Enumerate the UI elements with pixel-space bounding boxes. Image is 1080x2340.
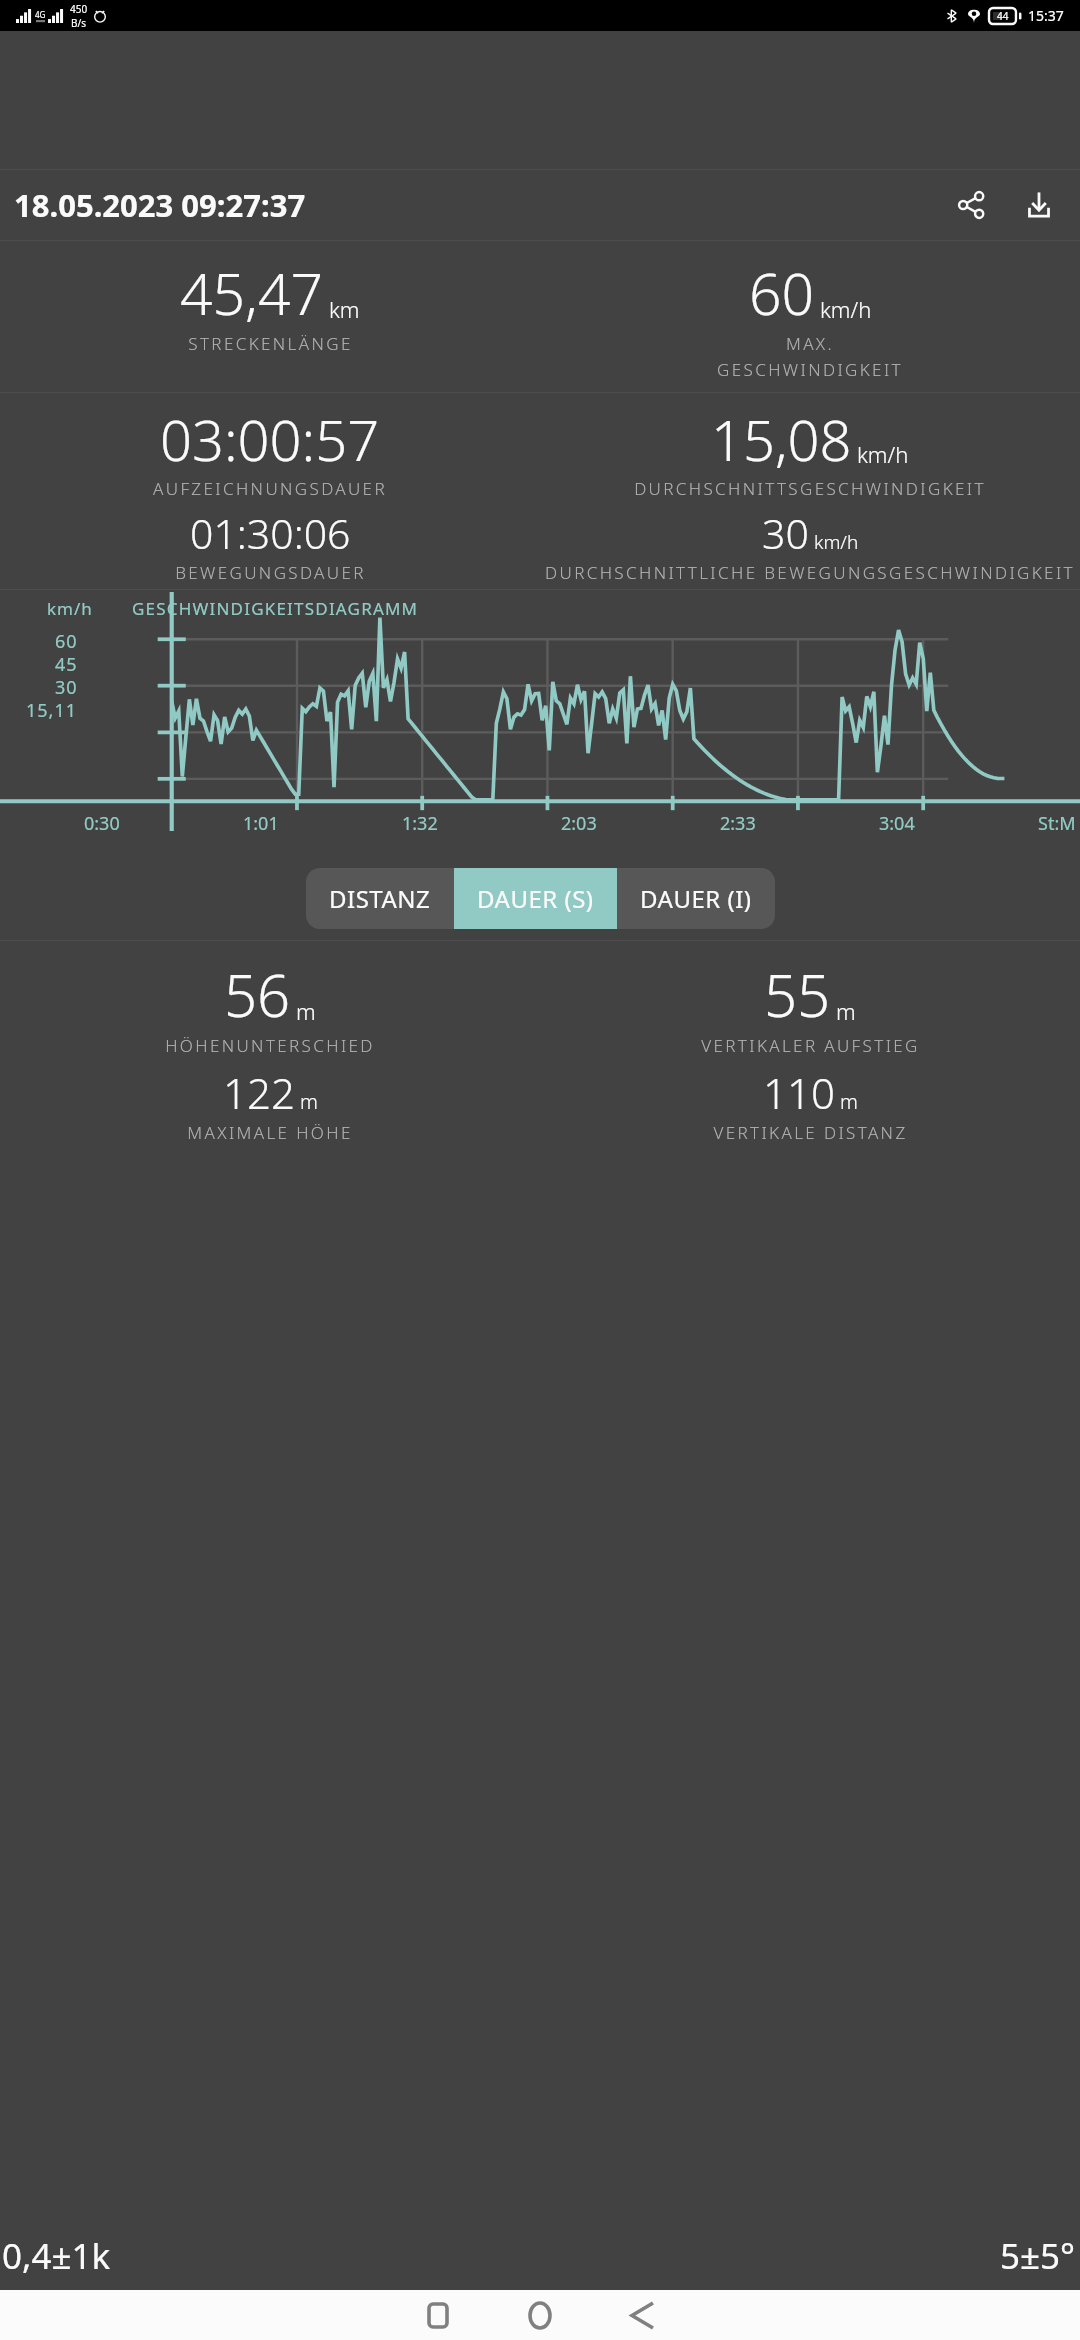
button[interactable]: Download <box>1012 178 1066 232</box>
button[interactable]: Recents <box>407 2290 469 2340</box>
staticText: 30 <box>762 505 809 561</box>
staticText: 30 <box>55 675 78 700</box>
staticText: DURCHSCHNITTSGESCHWINDIGKEIT <box>634 477 986 500</box>
button[interactable]: DISTANZ <box>306 868 454 929</box>
staticText: 18.05.2023 09:27:37 <box>14 184 306 226</box>
staticText: 15,11 <box>26 698 78 723</box>
button[interactable]: 110 <box>540 1064 1080 1144</box>
button[interactable]: 122 <box>0 1064 540 1144</box>
staticText: 56 <box>224 955 291 1034</box>
staticText: 45 <box>55 652 78 677</box>
staticText: 4G <box>35 9 46 20</box>
button[interactable]: 03:00:57 <box>0 401 540 500</box>
button[interactable]: 60 <box>540 254 1080 381</box>
button[interactable]: DAUER (S) <box>454 868 617 929</box>
staticText: km <box>329 294 360 324</box>
staticText: m <box>836 996 856 1026</box>
staticText: 1:32 <box>402 811 438 836</box>
staticText: m <box>840 1088 858 1115</box>
button[interactable]: 45,47 <box>0 254 540 355</box>
button[interactable]: DAUER (I) <box>617 868 775 929</box>
staticText: DISTANZ <box>329 882 431 915</box>
button[interactable]: 15,08 <box>540 401 1080 500</box>
staticText: 0,4±1k <box>2 2232 111 2280</box>
staticText: BEWEGUNGSDAUER <box>175 561 366 584</box>
staticText: 44 <box>997 9 1009 23</box>
staticText: 110 <box>763 1064 835 1121</box>
staticText: MAX. GESCHWINDIGKEIT <box>717 332 903 381</box>
staticText: 122 <box>223 1064 295 1121</box>
staticText: 2:33 <box>720 811 756 836</box>
staticText: 45,47 <box>180 254 324 332</box>
staticText: 03:00:57 <box>160 401 380 477</box>
staticText: B/s <box>71 16 87 30</box>
staticText: 3:04 <box>879 811 915 836</box>
staticText: 0:30 <box>84 811 120 836</box>
staticText: 15:37 <box>1028 6 1064 25</box>
staticText: MAXIMALE HÖHE <box>187 1121 353 1144</box>
staticText: km/h <box>820 294 872 324</box>
button[interactable]: 55 <box>540 955 1080 1057</box>
button[interactable]: Back <box>611 2290 673 2340</box>
staticText: 01:30:06 <box>190 505 351 561</box>
staticText: St:M <box>1038 811 1076 836</box>
staticText: STRECKENLÄNGE <box>188 332 353 355</box>
staticText: HÖHENUNTERSCHIED <box>165 1034 375 1057</box>
button[interactable]: 56 <box>0 955 540 1057</box>
staticText: 60 <box>749 254 815 332</box>
button[interactable]: Share <box>944 178 998 232</box>
staticText: DAUER (S) <box>477 882 594 915</box>
button[interactable]: 01:30:06 <box>0 505 540 584</box>
staticText: m <box>300 1088 318 1115</box>
staticText: km/h <box>47 597 93 620</box>
button[interactable]: Home <box>509 2290 571 2340</box>
staticText: 1:01 <box>243 811 279 836</box>
staticText: AUFZEICHNUNGSDAUER <box>153 477 387 500</box>
button[interactable]: 30 <box>540 505 1080 584</box>
staticText: 15,08 <box>711 401 852 477</box>
staticText: m <box>296 996 316 1026</box>
staticText: VERTIKALE DISTANZ <box>713 1121 908 1144</box>
staticText: DAUER (I) <box>640 882 752 915</box>
staticText: km/h <box>857 439 909 469</box>
staticText: GESCHWINDIGKEITSDIAGRAMM <box>132 597 419 620</box>
staticText: 55 <box>764 955 831 1034</box>
staticText: DURCHSCHNITTLICHE BEWEGUNGSGESCHWINDIGKE… <box>545 561 1075 584</box>
staticText: 5±5° <box>1000 2232 1076 2280</box>
staticText: 2:03 <box>561 811 597 836</box>
staticText: km/h <box>814 529 859 555</box>
staticText: 60 <box>55 629 78 654</box>
staticText: VERTIKALER AUFSTIEG <box>701 1034 920 1057</box>
staticText: 450 <box>70 2 88 16</box>
